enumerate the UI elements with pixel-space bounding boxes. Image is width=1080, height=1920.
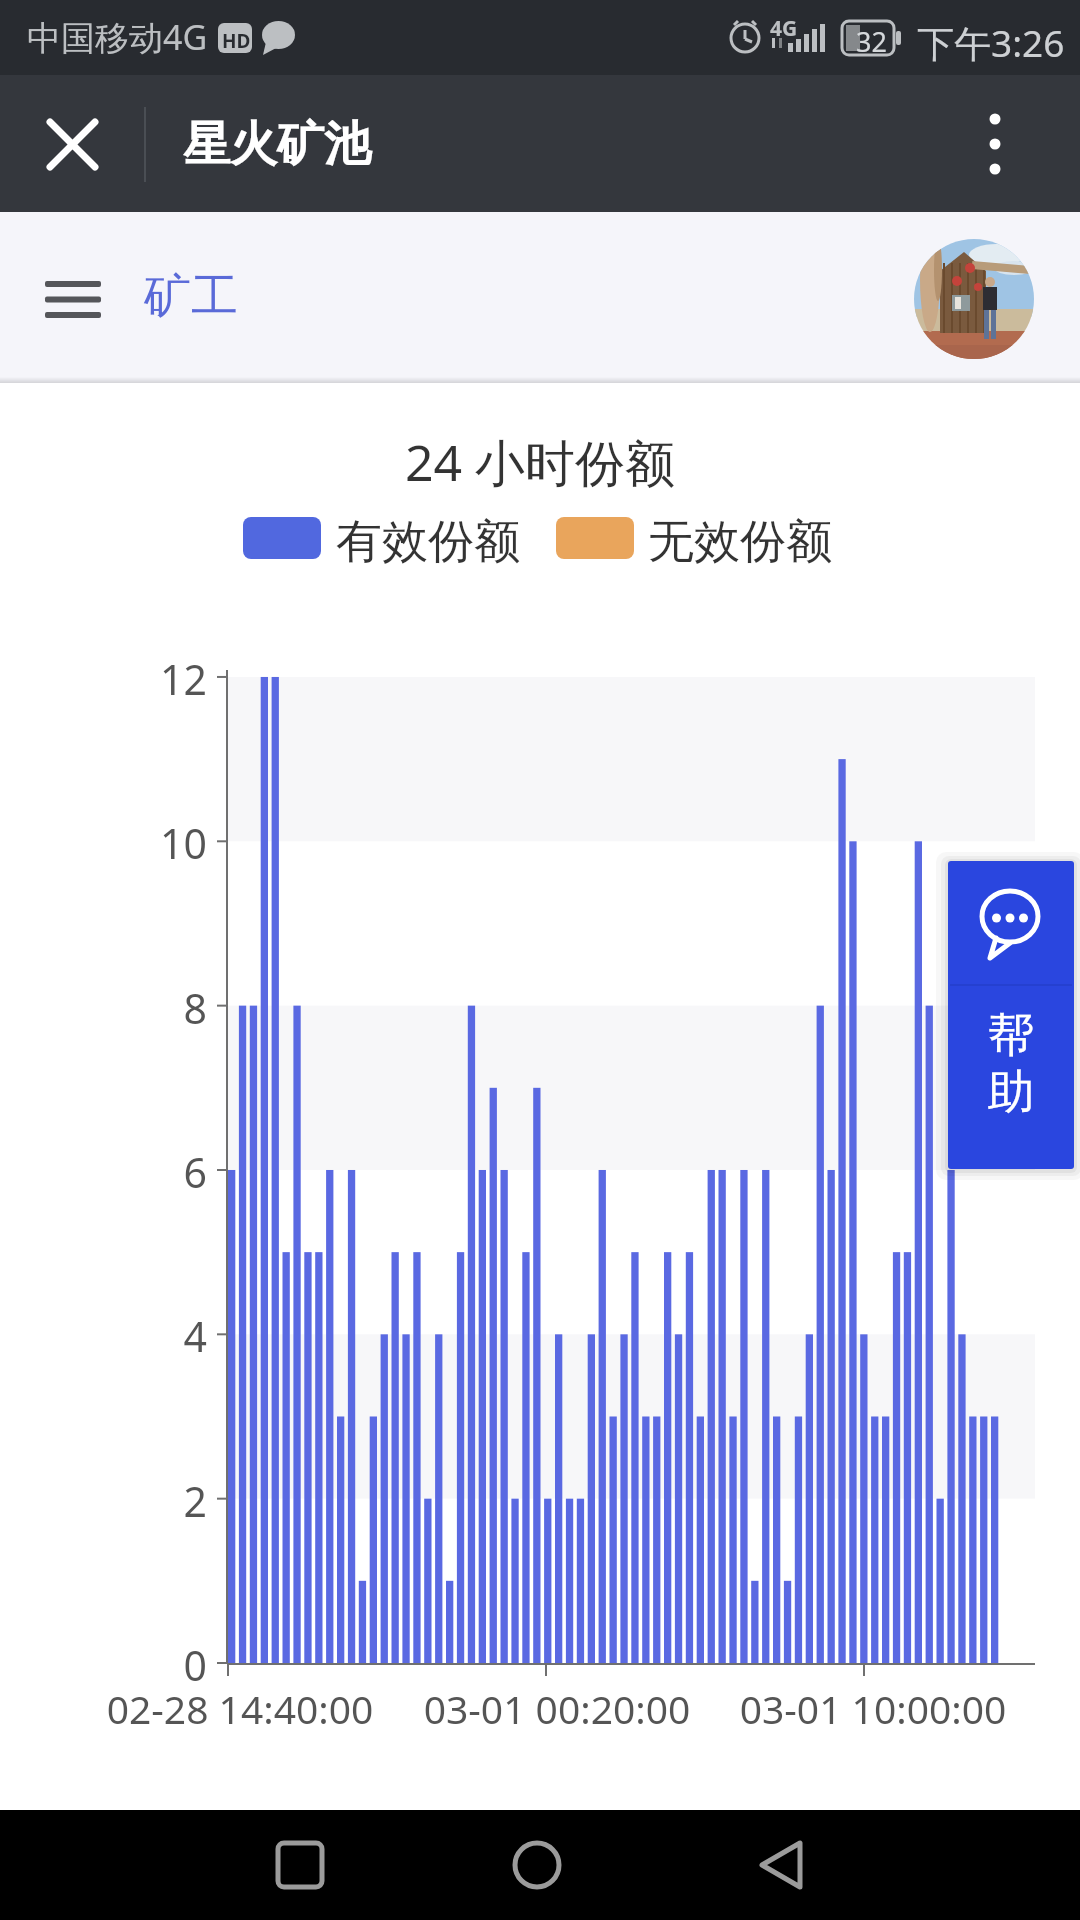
staticText: 中国移动4G — [27, 14, 208, 60]
button[interactable] — [30, 102, 115, 187]
staticText: 8 — [100, 980, 207, 1036]
button[interactable]: 帮 — [948, 861, 1074, 1169]
staticText: 助 — [948, 1063, 1074, 1122]
staticText: 下午3:26 — [917, 17, 1065, 68]
button[interactable] — [495, 1825, 579, 1909]
staticText: 有效份额 — [336, 513, 520, 571]
staticText: 无效份额 — [648, 513, 832, 571]
staticText: 星火矿池 — [183, 115, 371, 174]
staticText: 02-28 14:40:00 — [90, 1682, 390, 1735]
staticText: 32 — [856, 23, 887, 60]
button[interactable] — [30, 267, 116, 329]
staticText: HD — [222, 28, 251, 54]
staticText: 帮 — [948, 1006, 1074, 1065]
staticText: 03-01 10:00:00 — [723, 1682, 1023, 1735]
button[interactable] — [739, 1825, 823, 1909]
staticText: 10 — [100, 815, 207, 871]
button[interactable] — [258, 1825, 342, 1909]
staticText: 2 — [100, 1473, 207, 1529]
staticText: 矿工 — [144, 267, 238, 326]
button[interactable]: 矿工 — [144, 267, 264, 337]
button[interactable] — [955, 95, 1035, 195]
staticText: 03-01 00:20:00 — [407, 1682, 707, 1735]
staticText: 6 — [100, 1144, 207, 1200]
staticText: 0 — [100, 1637, 207, 1693]
staticText: 12 — [100, 651, 207, 707]
button[interactable] — [914, 239, 1034, 359]
staticText: 24 小时份额 — [0, 428, 1080, 496]
staticText: 4 — [100, 1308, 207, 1364]
staticText: 4G — [770, 14, 798, 43]
